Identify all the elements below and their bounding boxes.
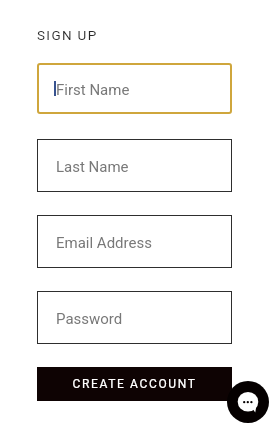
- staticText: SIGN UP: [37, 27, 98, 43]
- button[interactable]: Password: [37, 291, 232, 344]
- staticText: First Name: [56, 81, 130, 99]
- button[interactable]: Chat: [227, 381, 269, 423]
- button[interactable]: Email Address: [37, 215, 232, 268]
- staticText: CREATE ACCOUNT: [72, 377, 197, 391]
- staticText: Last Name: [56, 158, 129, 176]
- staticText: Email Address: [56, 234, 152, 252]
- button[interactable]: First Name: [37, 63, 232, 114]
- button[interactable]: CREATE ACCOUNT: [37, 367, 232, 401]
- button[interactable]: Last Name: [37, 139, 232, 192]
- staticText: Password: [56, 310, 123, 328]
